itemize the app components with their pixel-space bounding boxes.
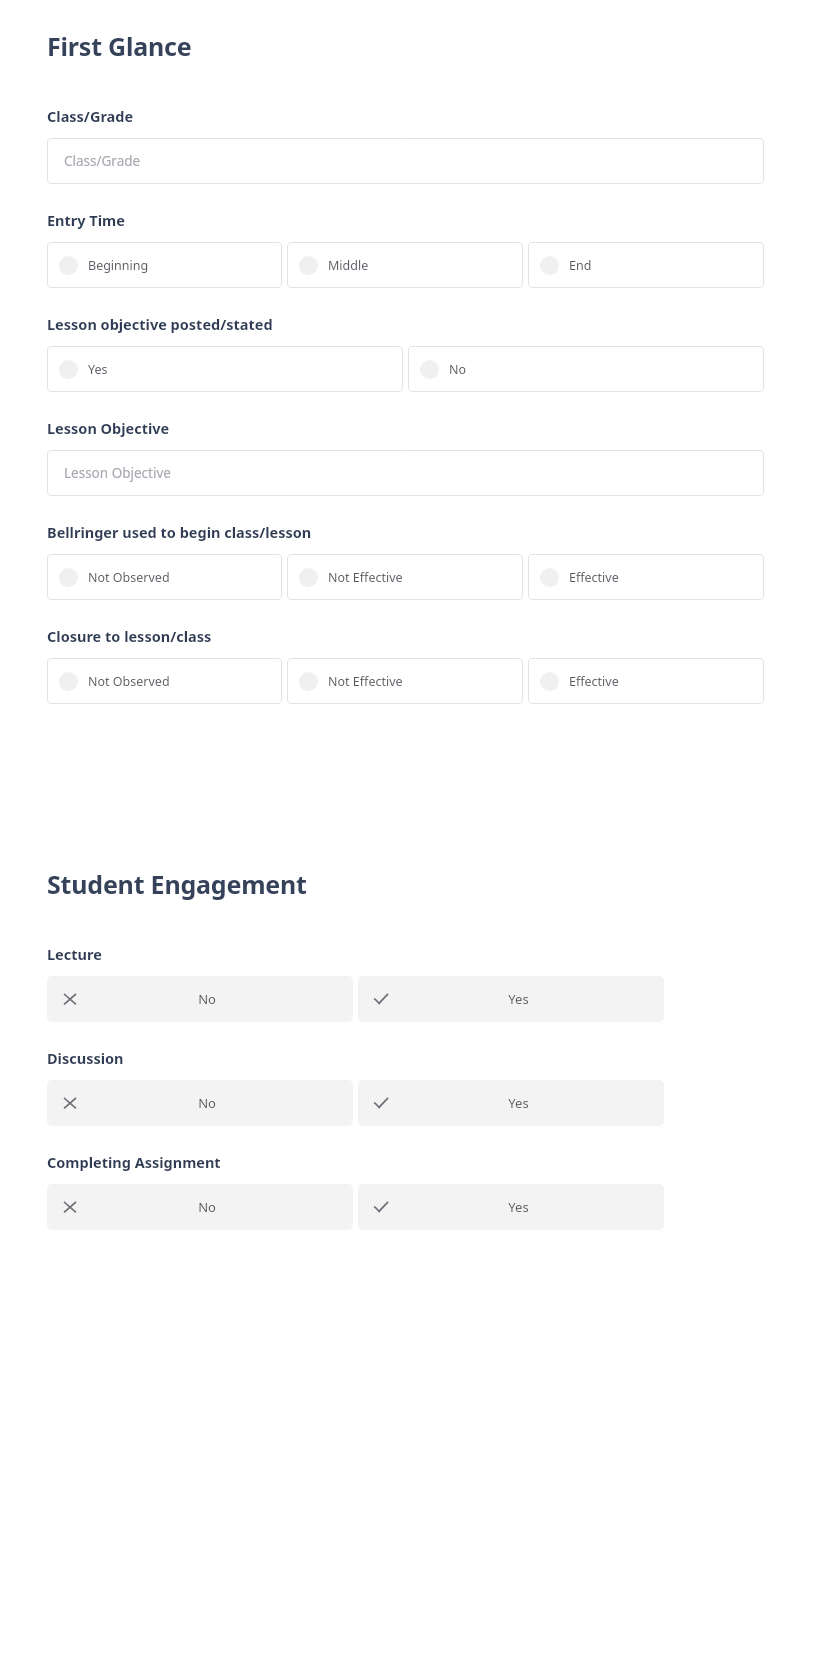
staticText: Discussion [47,1048,124,1068]
other: No [63,1200,77,1214]
button[interactable]: Yes [358,976,664,1022]
button[interactable]: No [47,976,353,1022]
button[interactable]: Not Observed [47,658,282,704]
staticText: Yes [508,1094,529,1112]
staticText: Not Observed [88,569,170,586]
button[interactable]: Lesson Objective [47,450,764,496]
staticText: Lesson objective posted/stated [47,314,273,334]
staticText: Lesson Objective [47,418,170,438]
button[interactable]: No [47,1080,353,1126]
staticText: Yes [88,361,108,378]
button[interactable]: Middle [287,242,523,288]
staticText: End [569,257,592,274]
staticText: Yes [508,1198,529,1216]
other: No [63,992,77,1006]
staticText: Entry Time [47,210,125,230]
button[interactable]: Not Observed [47,554,282,600]
staticText: Completing Assignment [47,1152,221,1172]
button[interactable]: Not Effective [287,658,523,704]
staticText: Not Observed [88,673,170,690]
staticText: Class/Grade [47,106,134,126]
button[interactable]: Effective [528,554,764,600]
staticText: Effective [569,569,619,586]
button[interactable]: Yes [358,1184,664,1230]
button[interactable]: Effective [528,658,764,704]
staticText: Closure to lesson/class [47,626,212,646]
button[interactable]: No [47,1184,353,1230]
button[interactable]: Beginning [47,242,282,288]
staticText: First Glance [47,29,192,63]
staticText: Middle [328,257,369,274]
staticText: No [198,1094,216,1112]
other: Yes [374,1096,388,1110]
button[interactable]: No [408,346,764,392]
staticText: Yes [508,990,529,1008]
staticText: Bellringer used to begin class/lesson [47,522,312,542]
staticText: No [198,1198,216,1216]
staticText: Student Engagement [47,867,307,901]
staticText: Not Effective [328,673,403,690]
staticText: Class/Grade [64,152,141,170]
staticText: No [449,361,467,378]
button[interactable]: Class/Grade [47,138,764,184]
button[interactable]: Yes [358,1080,664,1126]
staticText: Beginning [88,257,149,274]
other: Yes [374,992,388,1006]
button[interactable]: Yes [47,346,403,392]
staticText: Lecture [47,944,102,964]
staticText: Lesson Objective [64,464,171,482]
button[interactable]: End [528,242,764,288]
other: Yes [374,1200,388,1214]
staticText: Not Effective [328,569,403,586]
button[interactable]: Not Effective [287,554,523,600]
staticText: Effective [569,673,619,690]
staticText: No [198,990,216,1008]
other: No [63,1096,77,1110]
